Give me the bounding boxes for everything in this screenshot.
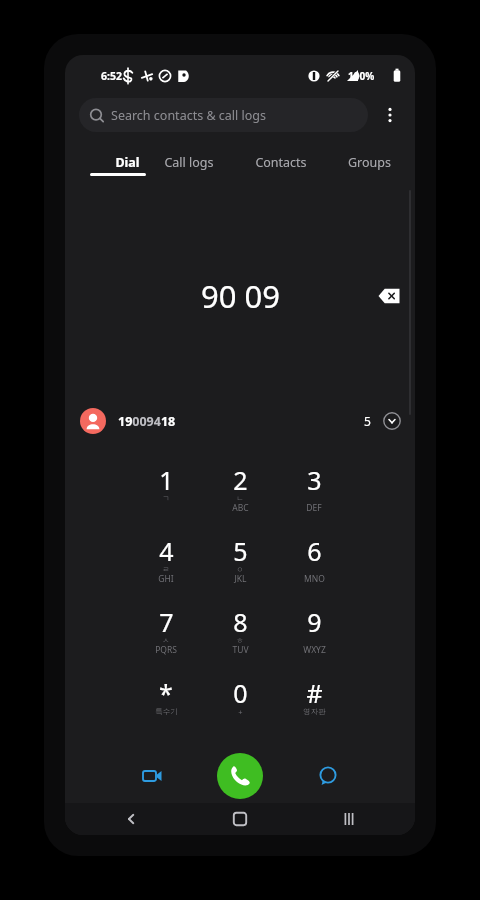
staticText: 0 <box>233 676 248 710</box>
staticText: MNO <box>304 573 325 585</box>
staticText: # <box>306 676 323 710</box>
staticText: 9 <box>307 605 322 639</box>
staticText: 8 <box>233 605 248 639</box>
staticText: TUV <box>232 644 249 656</box>
staticText: Search contacts & call logs <box>111 107 266 124</box>
staticText: 90 09 <box>201 275 280 317</box>
button[interactable]: More options <box>373 98 407 132</box>
button[interactable]: 8 <box>203 595 277 661</box>
staticText: 2 <box>233 463 248 497</box>
button[interactable]: Message <box>305 753 351 799</box>
staticText: 6 <box>307 534 322 568</box>
button[interactable]: 4 <box>129 524 203 590</box>
staticText: 3 <box>307 463 322 497</box>
button[interactable]: Home <box>222 803 258 835</box>
staticText: 6:52 <box>101 69 122 83</box>
button[interactable]: # <box>277 666 351 732</box>
staticText: ㄹ <box>162 565 170 574</box>
staticText: ㄱ <box>162 494 170 503</box>
staticText: Call logs <box>164 154 214 171</box>
staticText: 19009418 <box>118 413 176 430</box>
staticText: 영자판 <box>303 707 326 716</box>
staticText: 4 <box>159 534 174 568</box>
button[interactable]: Contacts <box>244 145 318 179</box>
button[interactable]: Recents <box>331 803 367 835</box>
button[interactable]: Expand <box>375 404 409 438</box>
staticText: WXYZ <box>303 644 326 656</box>
button[interactable]: Video call <box>129 753 175 799</box>
button[interactable]: 6 <box>277 524 351 590</box>
staticText: 5 <box>364 413 371 429</box>
staticText: DEF <box>306 502 322 514</box>
button[interactable]: * <box>129 666 203 732</box>
button[interactable]: Backspace <box>367 274 411 318</box>
button[interactable]: Groups <box>332 145 406 179</box>
staticText: ㄴ <box>236 494 244 503</box>
staticText: + <box>238 707 243 717</box>
staticText: 5 <box>233 534 248 568</box>
staticText: 100% <box>348 69 375 83</box>
button[interactable]: 5 <box>203 524 277 590</box>
button[interactable]: Call logs <box>152 145 226 179</box>
button[interactable]: 7 <box>129 595 203 661</box>
button[interactable]: Search contacts & call logs <box>79 98 368 132</box>
staticText: ㅎ <box>236 636 244 645</box>
button[interactable]: 1 <box>129 453 203 519</box>
button[interactable]: Call <box>217 753 263 799</box>
staticText: ABC <box>232 502 249 514</box>
staticText: 특수기 <box>155 707 178 716</box>
staticText: Groups <box>348 154 391 171</box>
staticText: Dial <box>115 154 140 171</box>
staticText: PQRS <box>155 644 177 656</box>
staticText: GHI <box>158 573 174 585</box>
button[interactable]: 0 <box>203 666 277 732</box>
staticText: * <box>159 676 173 710</box>
staticText: 1 <box>159 463 174 497</box>
button[interactable]: Back <box>113 803 149 835</box>
staticText: 7 <box>159 605 174 639</box>
button[interactable]: 3 <box>277 453 351 519</box>
staticText: ㅇ <box>236 565 244 574</box>
button[interactable]: 2 <box>203 453 277 519</box>
button[interactable]: 9 <box>277 595 351 661</box>
staticText: ㅅ <box>162 636 170 645</box>
staticText: JKL <box>234 573 247 585</box>
button[interactable]: 19009418 <box>65 399 415 443</box>
button[interactable]: Dial <box>90 145 164 179</box>
staticText: Contacts <box>255 154 307 171</box>
